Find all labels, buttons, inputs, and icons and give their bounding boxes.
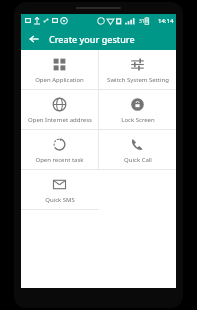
staticText: Open Application <box>35 76 84 84</box>
staticText: 14:14 <box>158 17 174 25</box>
staticText: Quick SMS <box>45 196 75 204</box>
button[interactable]: Quick Call <box>99 130 176 170</box>
button[interactable]: Back <box>26 31 42 47</box>
button[interactable]: Open Application <box>21 50 98 90</box>
staticText: 31% <box>139 18 149 25</box>
staticText: Quick Call <box>124 156 152 164</box>
button[interactable]: Open Internet address <box>21 90 98 130</box>
staticText: Switch System Setting <box>107 76 169 84</box>
staticText: Open recent task <box>35 156 84 164</box>
staticText: Create your gesture <box>49 33 135 45</box>
button[interactable]: Quick SMS <box>21 170 98 210</box>
staticText: Lock Screen <box>121 116 155 124</box>
button[interactable]: Switch System Setting <box>99 50 176 90</box>
button[interactable]: Lock Screen <box>99 90 176 130</box>
button[interactable]: Open recent task <box>21 130 98 170</box>
staticText: Open Internet address <box>28 116 92 124</box>
